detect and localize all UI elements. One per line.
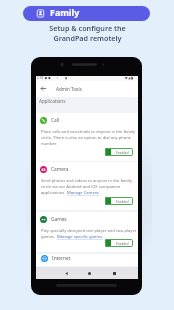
staticText: Send photos and videos to anyone in the … [41, 178, 133, 184]
staticText: Admin Tools [56, 86, 82, 92]
staticText: Applications [39, 98, 66, 104]
staticText: applications. [41, 190, 67, 196]
staticText: Setup & configure the GrandPad remotely [49, 23, 126, 43]
staticText: 2:33 [37, 76, 44, 80]
staticText: Family Administrators [50, 6, 142, 21]
button[interactable]: Home [83, 267, 95, 279]
staticText: Place calls and voicemails to anyone in … [41, 129, 136, 135]
staticText: Enabled [116, 150, 129, 154]
button[interactable]: Recents [108, 267, 120, 279]
button[interactable]: Enabled [105, 197, 133, 205]
staticText: Internet [52, 255, 71, 262]
staticText: circle via our Android and iOS companion [41, 184, 121, 190]
staticText: games. [41, 234, 57, 240]
staticText: Manage specific games. [57, 234, 104, 240]
staticText: circle. There is also an option to dial … [41, 135, 131, 141]
button[interactable]: Family Administrators [23, 6, 150, 21]
button[interactable]: Call [36, 113, 138, 161]
staticText: Enabled [116, 241, 129, 245]
staticText: Call [51, 117, 60, 124]
button[interactable]: Internet [41, 254, 81, 263]
staticText: Games [51, 216, 67, 223]
button[interactable]: Enabled [105, 239, 133, 247]
button[interactable]: Back [39, 84, 48, 93]
staticText: number. [41, 141, 57, 147]
button[interactable]: Enabled [105, 148, 133, 156]
button[interactable]: Games [36, 212, 138, 252]
staticText: Enabled [116, 199, 129, 203]
button[interactable]: Back [60, 267, 72, 279]
staticText: Play specially designed one player and t… [41, 228, 137, 234]
staticText: Manage Camera. [67, 190, 100, 196]
button[interactable]: Camera [36, 162, 138, 210]
staticText: Camera [51, 166, 69, 173]
